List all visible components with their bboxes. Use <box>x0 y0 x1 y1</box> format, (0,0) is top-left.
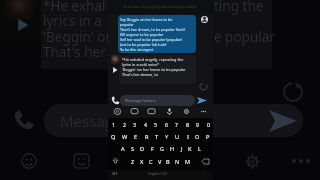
staticText: N <box>175 158 180 166</box>
staticText: Just to be popular (ah-huh) <box>120 42 167 47</box>
button[interactable]: O <box>195 133 200 141</box>
staticText: 1 <box>112 121 115 128</box>
button[interactable]: T <box>155 133 159 141</box>
button[interactable]: More options <box>292 159 310 163</box>
staticText: That's her dream, to be popular (huh) <box>120 27 185 32</box>
button[interactable]: J <box>181 145 183 153</box>
staticText: Z <box>131 158 135 166</box>
button[interactable]: Action 2 <box>131 108 138 115</box>
staticText: 6 <box>165 121 168 128</box>
staticText: ting the <box>214 0 264 15</box>
button[interactable]: Emoji <box>21 153 37 169</box>
button[interactable]: 3 <box>133 121 136 128</box>
staticText: E <box>134 133 138 141</box>
staticText: Message Subaru <box>125 98 157 103</box>
button[interactable]: I <box>187 133 189 141</box>
staticText: That's her dream, to <box>122 72 158 77</box>
staticText: A <box>121 145 125 153</box>
button[interactable]: 1 <box>112 121 115 128</box>
button[interactable]: Profile <box>201 16 208 23</box>
button[interactable]: N <box>175 158 180 166</box>
button[interactable]: Action 3 <box>148 108 155 115</box>
button[interactable]: Message Subaru <box>120 95 195 106</box>
button[interactable]: 2 <box>123 121 126 128</box>
staticText: Instructor: Everything Obsessive says ma… <box>124 4 202 9</box>
button[interactable]: Stickers <box>74 154 89 168</box>
button[interactable]: Call <box>111 96 120 105</box>
staticText: O <box>195 133 200 141</box>
staticText: 2 <box>123 121 126 128</box>
button[interactable]: Send <box>197 97 207 104</box>
button[interactable]: L <box>198 145 201 153</box>
staticText: 8 <box>186 121 189 128</box>
staticText: 9 <box>196 121 199 128</box>
button[interactable]: W <box>122 133 128 141</box>
button[interactable]: Send <box>269 110 297 132</box>
staticText: e popular <box>214 28 275 46</box>
button[interactable]: Q <box>111 133 116 141</box>
button[interactable]: 4 <box>144 121 147 128</box>
button[interactable]: 0 <box>207 121 210 128</box>
staticText: Say Beggin on her knees to be <box>120 17 173 22</box>
staticText: H <box>170 145 175 153</box>
button[interactable]: Z <box>131 158 135 166</box>
staticText: M <box>185 158 191 166</box>
button[interactable]: Backspace <box>202 159 209 164</box>
button[interactable]: B <box>166 158 170 166</box>
staticText: S <box>131 145 135 153</box>
button[interactable]: M <box>185 158 191 166</box>
button[interactable]: Regenerate <box>200 83 207 90</box>
button[interactable]: 6 <box>165 121 168 128</box>
staticText: 4 <box>144 121 147 128</box>
button[interactable]: Action 5 <box>183 108 190 115</box>
staticText: X <box>140 158 144 166</box>
staticText: Ya be the strongest <box>120 47 154 52</box>
button[interactable]: F <box>151 145 154 153</box>
staticText: G <box>160 145 165 153</box>
button[interactable]: Play <box>17 19 29 31</box>
staticText: !#1 <box>112 171 118 176</box>
button[interactable]: Shift <box>113 158 118 163</box>
button[interactable]: 8 <box>186 121 189 128</box>
button[interactable]: K <box>188 145 192 153</box>
button[interactable]: Play <box>112 67 118 73</box>
button[interactable]: C <box>149 158 153 166</box>
staticText: C <box>149 158 153 166</box>
button[interactable]: Action 4 <box>166 108 173 115</box>
staticText: J <box>181 145 183 153</box>
button[interactable]: V <box>158 158 162 166</box>
staticText: W <box>122 133 128 141</box>
staticText: popular <box>120 22 134 27</box>
staticText: R <box>145 133 149 141</box>
button[interactable]: U <box>175 133 180 141</box>
staticText: 'Beggin' on her knees to be popular <box>122 67 186 72</box>
staticText: English (US) <box>148 171 167 176</box>
button[interactable]: S <box>131 145 135 153</box>
button[interactable]: R <box>145 133 149 141</box>
staticText: *He exhal <box>43 0 106 15</box>
button[interactable]: Settings <box>244 154 261 169</box>
button[interactable]: D <box>140 145 145 153</box>
staticText: P <box>206 133 210 141</box>
button[interactable]: H <box>170 145 175 153</box>
button[interactable]: E <box>134 133 138 141</box>
staticText: V <box>158 158 162 166</box>
staticText: K <box>188 145 192 153</box>
button[interactable]: A <box>121 145 125 153</box>
button[interactable]: P <box>206 133 210 141</box>
button[interactable]: Say Beggin on her knees to be <box>118 15 196 53</box>
button[interactable]: Message <box>44 104 303 137</box>
staticText: Kill anyone to be popular <box>120 32 164 37</box>
button[interactable]: Call <box>13 109 35 131</box>
button[interactable]: X <box>140 158 144 166</box>
button[interactable]: Action 1 <box>114 108 121 115</box>
button[interactable]: 9 <box>196 121 199 128</box>
button[interactable]: 5 <box>154 121 157 128</box>
button[interactable]: 7 <box>175 121 178 128</box>
button[interactable]: Action 6 <box>200 108 207 115</box>
button[interactable]: Y <box>165 133 169 141</box>
button[interactable] <box>119 55 196 84</box>
staticText: lyrics in a <box>43 12 102 30</box>
button[interactable]: G <box>160 145 165 153</box>
button[interactable]: Replay <box>284 83 302 101</box>
